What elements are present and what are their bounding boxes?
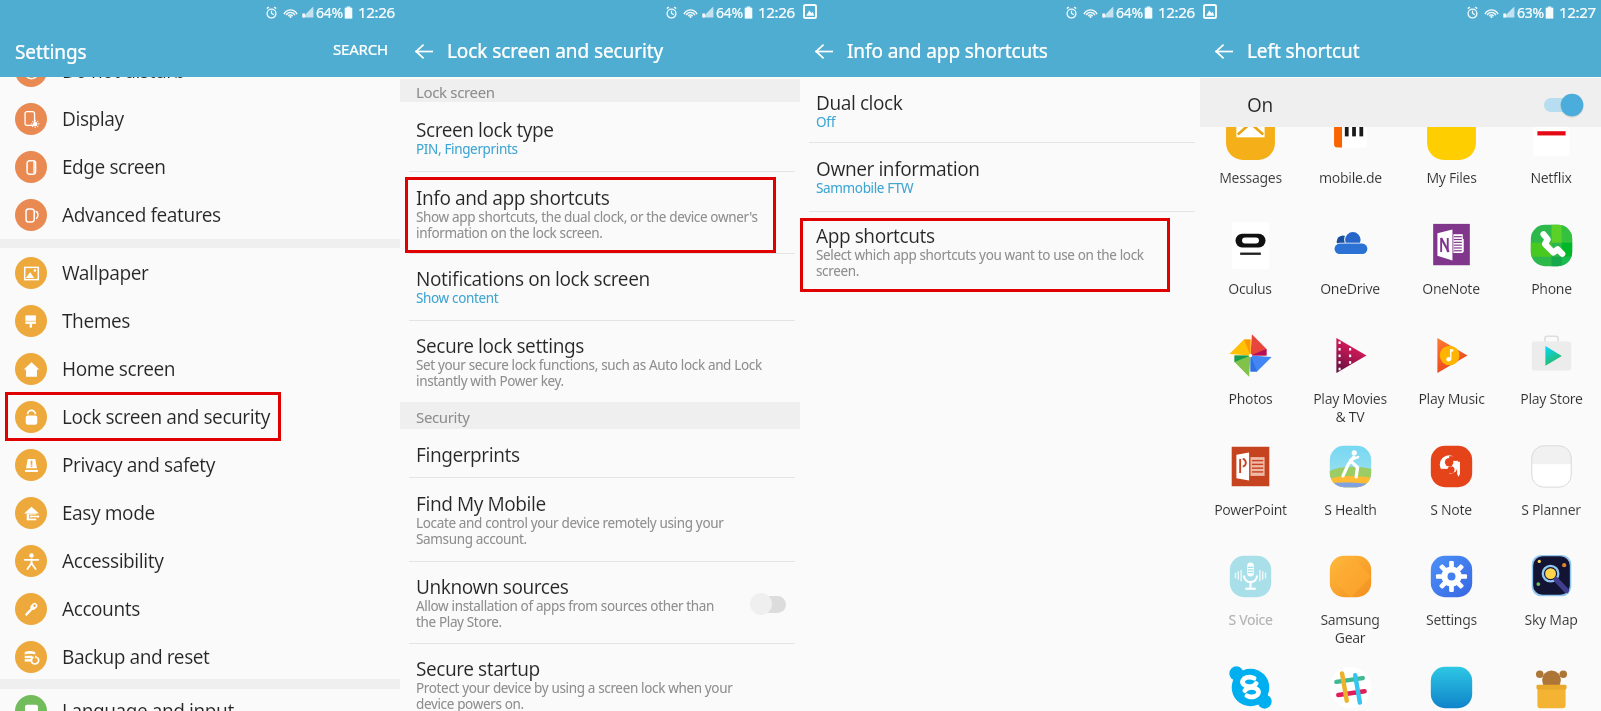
staticText: Photos bbox=[1228, 389, 1273, 408]
button[interactable]: Sky Map bbox=[1501, 553, 1601, 661]
staticText: Netflix bbox=[1530, 168, 1572, 187]
staticText: Security bbox=[416, 407, 470, 427]
staticText: S Planner bbox=[1521, 500, 1581, 519]
staticText: Advanced features bbox=[62, 202, 221, 228]
button[interactable]: Screen lock type bbox=[400, 104, 800, 163]
staticText: My Files bbox=[1426, 168, 1477, 187]
button[interactable]: Oculus bbox=[1200, 222, 1300, 330]
button[interactable]: Themes bbox=[0, 297, 400, 345]
button[interactable]: Fingerprints bbox=[400, 429, 800, 465]
staticText: Language and input bbox=[62, 698, 234, 711]
staticText: Easy mode bbox=[62, 500, 155, 526]
staticText: PIN, Fingerprints bbox=[416, 140, 518, 158]
staticText: Do not disturb bbox=[62, 58, 186, 84]
button[interactable]: Sticker bbox=[1501, 664, 1601, 711]
button[interactable]: Slack bbox=[1300, 664, 1400, 711]
button[interactable]: Back bbox=[1206, 33, 1242, 69]
button[interactable]: Home screen bbox=[0, 345, 400, 393]
button[interactable]: OneDrive bbox=[1300, 222, 1400, 330]
staticText: Play Movies & TV bbox=[1313, 389, 1387, 426]
staticText: Select which app shortcuts you want to u… bbox=[816, 246, 1144, 280]
button[interactable]: Backup and reset bbox=[0, 633, 400, 681]
staticText: OneDrive bbox=[1320, 279, 1380, 298]
staticText: Backup and reset bbox=[62, 644, 210, 670]
staticText: App shortcuts bbox=[816, 223, 935, 249]
staticText: Samsung Gear bbox=[1320, 610, 1380, 647]
staticText: Play Music bbox=[1418, 389, 1485, 408]
button[interactable]: Skype bbox=[1200, 664, 1300, 711]
button[interactable]: Accessibility bbox=[0, 537, 400, 585]
button[interactable]: Owner information bbox=[800, 143, 1200, 202]
button[interactable]: Easy mode bbox=[0, 489, 400, 537]
button[interactable]: Display bbox=[0, 95, 400, 143]
button[interactable]: Secure startup bbox=[400, 643, 800, 711]
button[interactable]: Dual clock bbox=[800, 77, 1200, 136]
staticText: Unknown sources bbox=[416, 574, 569, 600]
staticText: Allow installation of apps from sources … bbox=[416, 597, 715, 631]
button[interactable]: Messages bbox=[1200, 111, 1300, 219]
button[interactable]: OneNote bbox=[1401, 222, 1501, 330]
staticText: Secure lock settings bbox=[416, 333, 584, 359]
button[interactable]: Advanced features bbox=[0, 191, 400, 239]
staticText: 12:26 bbox=[1158, 2, 1195, 22]
staticText: Left shortcut bbox=[1247, 38, 1360, 64]
staticText: Themes bbox=[62, 308, 130, 334]
button[interactable]: Do not disturb bbox=[0, 47, 400, 95]
staticText: Settings bbox=[1426, 610, 1477, 629]
button[interactable]: Secure lock settings bbox=[400, 320, 800, 395]
staticText: Secure startup bbox=[416, 656, 540, 682]
button[interactable]: Edge screen bbox=[0, 143, 400, 191]
button[interactable]: Back bbox=[406, 33, 442, 69]
button[interactable]: Photos bbox=[1200, 332, 1300, 440]
button[interactable]: On bbox=[1200, 78, 1601, 127]
staticText: Dual clock bbox=[816, 90, 903, 116]
button[interactable]: S Planner bbox=[1501, 443, 1601, 551]
button[interactable]: Lock screen and security bbox=[0, 393, 400, 441]
staticText: Protect your device by using a screen lo… bbox=[416, 679, 733, 711]
staticText: 64% bbox=[716, 3, 743, 22]
button[interactable]: Play Movies & TV bbox=[1300, 332, 1400, 440]
button[interactable]: App shortcuts bbox=[800, 210, 1200, 285]
button[interactable]: My Files bbox=[1401, 111, 1501, 219]
staticText: 64% bbox=[1116, 3, 1143, 22]
staticText: S Note bbox=[1430, 500, 1472, 519]
button[interactable]: SwiftKey bbox=[1401, 664, 1501, 711]
button[interactable]: Unknown sources bbox=[400, 561, 800, 636]
button[interactable]: S Note bbox=[1401, 443, 1501, 551]
button[interactable]: SEARCH bbox=[319, 33, 400, 65]
staticText: OneNote bbox=[1422, 279, 1480, 298]
button[interactable]: Play Music bbox=[1401, 332, 1501, 440]
staticText: Info and app shortcuts bbox=[416, 185, 610, 211]
staticText: Sammobile FTW bbox=[816, 179, 914, 197]
staticText: Sky Map bbox=[1524, 610, 1578, 629]
staticText: Set your secure lock functions, such as … bbox=[416, 356, 762, 390]
staticText: Show app shortcuts, the dual clock, or t… bbox=[416, 208, 758, 242]
button[interactable]: S Health bbox=[1300, 443, 1400, 551]
button[interactable]: Back bbox=[806, 33, 842, 69]
button[interactable]: Info and app shortcuts bbox=[400, 172, 800, 247]
button[interactable]: S Voice bbox=[1200, 553, 1300, 661]
staticText: Off bbox=[816, 113, 836, 131]
staticText: Accounts bbox=[62, 596, 140, 622]
button[interactable]: Privacy and safety bbox=[0, 441, 400, 489]
button[interactable]: Netflix bbox=[1501, 111, 1601, 219]
button[interactable]: Find My Mobile bbox=[400, 478, 800, 553]
button[interactable]: Phone bbox=[1501, 222, 1601, 330]
button[interactable]: Language and input bbox=[0, 687, 400, 711]
staticText: Edge screen bbox=[62, 154, 166, 180]
staticText: Locate and control your device remotely … bbox=[416, 514, 724, 548]
button[interactable]: Accounts bbox=[0, 585, 400, 633]
button[interactable]: mobile.de bbox=[1300, 111, 1400, 219]
button[interactable]: Settings bbox=[1401, 553, 1501, 661]
button[interactable]: PowerPoint bbox=[1200, 443, 1300, 551]
staticText: Show content bbox=[416, 289, 499, 307]
button[interactable]: Play Store bbox=[1501, 332, 1601, 440]
button[interactable]: Wallpaper bbox=[0, 249, 400, 297]
button[interactable]: Notifications on lock screen bbox=[400, 253, 800, 312]
button[interactable]: Samsung Gear bbox=[1300, 553, 1400, 661]
button[interactable]: Unknown sources toggle bbox=[740, 592, 788, 616]
staticText: 12:26 bbox=[358, 2, 395, 22]
staticText: S Voice bbox=[1228, 610, 1273, 629]
staticText: mobile.de bbox=[1319, 168, 1382, 187]
staticText: Wallpaper bbox=[62, 260, 149, 286]
